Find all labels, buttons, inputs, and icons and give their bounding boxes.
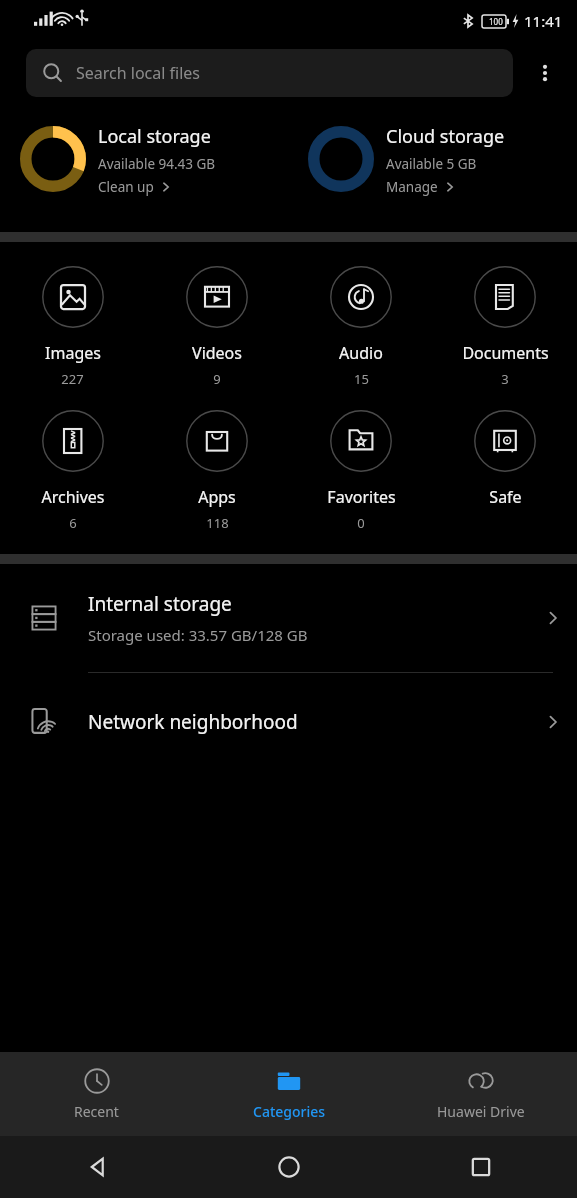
staticText: Recent: [74, 1102, 119, 1121]
button[interactable]: Home: [193, 1136, 385, 1198]
button[interactable]: Documents: [433, 262, 577, 392]
staticText: Safe: [489, 486, 522, 508]
button[interactable]: Apps: [145, 406, 289, 536]
staticText: 9: [213, 370, 221, 388]
button[interactable]: Network neighborhood: [0, 673, 577, 771]
button[interactable]: Back: [0, 1136, 193, 1198]
staticText: Manage: [386, 178, 438, 196]
button[interactable]: Local storage: [0, 120, 288, 224]
staticText: 11:41: [524, 11, 563, 31]
staticText: Search local files: [76, 62, 201, 84]
staticText: Storage used: 33.57 GB/128 GB: [88, 625, 308, 645]
staticText: Documents: [462, 342, 549, 364]
button[interactable]: Search local files: [26, 49, 513, 97]
staticText: 15: [354, 370, 369, 388]
staticText: 100: [489, 16, 503, 27]
staticText: Available 94.43 GB: [98, 155, 216, 173]
button[interactable]: Favorites: [289, 406, 433, 536]
staticText: Cloud storage: [386, 124, 505, 149]
staticText: Network neighborhood: [88, 709, 298, 735]
button[interactable]: Videos: [145, 262, 289, 392]
button[interactable]: More options: [513, 47, 577, 99]
button[interactable]: Cloud storage: [288, 120, 577, 224]
staticText: Huawei Drive: [437, 1102, 525, 1121]
staticText: Internal storage: [88, 591, 232, 617]
staticText: Local storage: [98, 124, 211, 149]
staticText: Images: [45, 342, 101, 364]
button[interactable]: Archives: [0, 406, 145, 536]
staticText: Apps: [198, 486, 236, 508]
button[interactable]: Internal storage: [0, 564, 577, 672]
staticText: Clean up: [98, 178, 154, 196]
staticText: 0: [357, 514, 365, 532]
staticText: Favorites: [327, 486, 396, 508]
button[interactable]: Safe: [433, 406, 577, 512]
staticText: Videos: [192, 342, 242, 364]
staticText: Categories: [253, 1102, 326, 1121]
button[interactable]: Huawei Drive: [385, 1052, 577, 1136]
staticText: 6: [69, 514, 77, 532]
button[interactable]: Categories: [193, 1052, 385, 1136]
staticText: Archives: [41, 486, 105, 508]
button[interactable]: Recents: [385, 1136, 577, 1198]
staticText: 227: [61, 370, 84, 388]
button[interactable]: Images: [0, 262, 145, 392]
button[interactable]: Recent: [0, 1052, 193, 1136]
staticText: 3: [501, 370, 509, 388]
staticText: 118: [206, 514, 229, 532]
staticText: Available 5 GB: [386, 155, 477, 173]
staticText: Audio: [339, 342, 383, 364]
button[interactable]: Audio: [289, 262, 433, 392]
